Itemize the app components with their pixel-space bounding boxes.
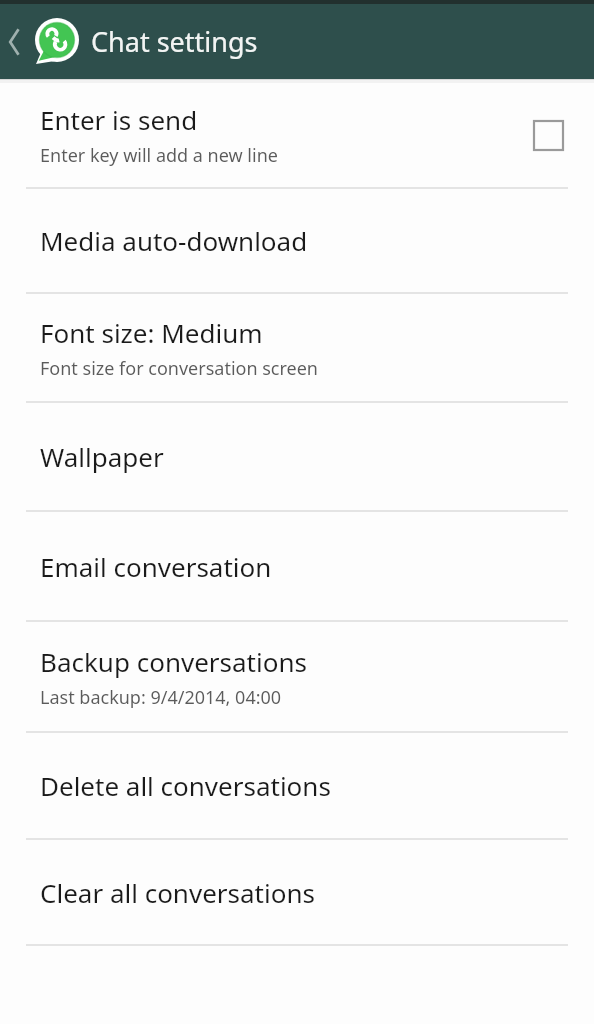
button[interactable]: Delete all conversations [0, 733, 594, 838]
button[interactable]: Backup conversations [0, 622, 594, 731]
button[interactable]: Wallpaper [0, 403, 594, 510]
button[interactable]: Media auto-download [0, 189, 594, 292]
button[interactable]: Enter is send [0, 83, 594, 187]
staticText: Clear all conversations [40, 875, 315, 910]
button[interactable]: Clear all conversations [0, 840, 594, 944]
staticText: Delete all conversations [40, 768, 331, 803]
button[interactable]: Navigate up [0, 4, 81, 79]
button[interactable]: Email conversation [0, 512, 594, 620]
staticText: Enter key will add a new line [40, 143, 278, 168]
staticText: Font size for conversation screen [40, 356, 318, 381]
staticText: Wallpaper [40, 439, 164, 474]
staticText: Last backup: 9/4/2014, 04:00 [40, 685, 282, 710]
staticText: Backup conversations [40, 644, 307, 679]
button[interactable]: Font size: Medium [0, 294, 594, 401]
staticText: Enter is send [40, 102, 198, 137]
staticText: Email conversation [40, 549, 272, 584]
staticText: Font size: Medium [40, 315, 263, 350]
staticText: Chat settings [91, 23, 258, 60]
staticText: Media auto-download [40, 223, 308, 258]
button[interactable]: Enter is send toggle [526, 113, 570, 157]
